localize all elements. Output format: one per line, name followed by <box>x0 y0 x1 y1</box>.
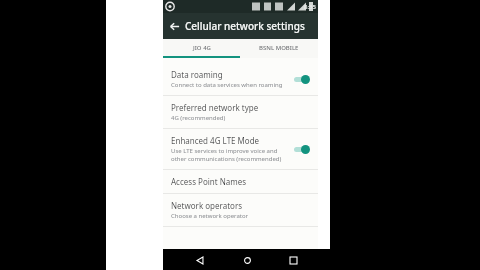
staticText: Preferred network type <box>171 102 259 113</box>
staticText: 4G (recommended) <box>171 114 226 122</box>
staticText: Enhanced 4G LTE Mode <box>171 135 260 146</box>
button[interactable]: BSNL MOBILE <box>240 39 318 56</box>
button[interactable]: Preferred network type <box>163 96 318 128</box>
staticText: Access Point Names <box>171 176 247 187</box>
button[interactable]: Access Point Names <box>163 170 318 193</box>
staticText: 8:35 <box>304 3 316 11</box>
button[interactable]: JIO 4G <box>163 39 240 56</box>
button[interactable]: Home <box>238 251 256 269</box>
button[interactable]: Toggle Data roaming <box>292 73 312 85</box>
staticText: BSNL MOBILE <box>259 44 299 52</box>
button[interactable]: Enhanced 4G LTE Mode <box>163 129 318 169</box>
button[interactable]: Network operators <box>163 194 318 226</box>
staticText: Cellular network settings <box>185 19 305 33</box>
staticText: Choose a network operator <box>171 212 249 220</box>
button[interactable]: Recents <box>284 251 302 269</box>
staticText: Connect to data services when roaming <box>171 81 283 89</box>
button[interactable]: Data roaming <box>163 63 318 95</box>
staticText: Use LTE services to improve voice and ot… <box>171 147 282 163</box>
staticText: Network operators <box>171 200 243 211</box>
staticText: JIO 4G <box>193 44 211 52</box>
button[interactable]: Toggle Enhanced 4G LTE Mode <box>292 143 312 155</box>
button[interactable]: Back <box>163 15 185 37</box>
button[interactable]: Back <box>191 251 209 269</box>
staticText: Data roaming <box>171 69 223 80</box>
